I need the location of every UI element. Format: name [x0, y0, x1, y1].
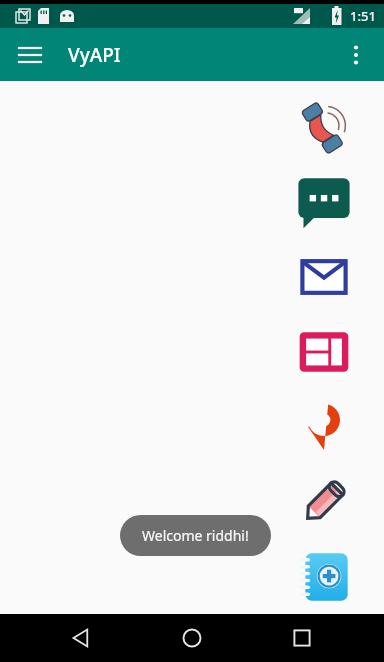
button[interactable]: Home: [172, 618, 212, 658]
button[interactable]: Welcome riddhi!: [120, 515, 271, 556]
button[interactable]: Messages: [292, 170, 356, 234]
staticText: VyAPI: [68, 42, 121, 68]
button[interactable]: Recent apps: [282, 618, 322, 658]
staticText: 1:51: [350, 7, 376, 25]
button[interactable]: Location: [292, 395, 356, 459]
button[interactable]: More options: [334, 33, 378, 77]
button[interactable]: Back: [62, 618, 102, 658]
button[interactable]: Mail: [292, 245, 356, 309]
button[interactable]: Web browser: [292, 320, 356, 384]
button[interactable]: Notes: [292, 470, 356, 534]
button[interactable]: Contacts: [292, 545, 356, 609]
staticText: Welcome riddhi!: [142, 526, 249, 545]
button[interactable]: Call: [292, 95, 356, 159]
button[interactable]: Open navigation drawer: [8, 33, 52, 77]
